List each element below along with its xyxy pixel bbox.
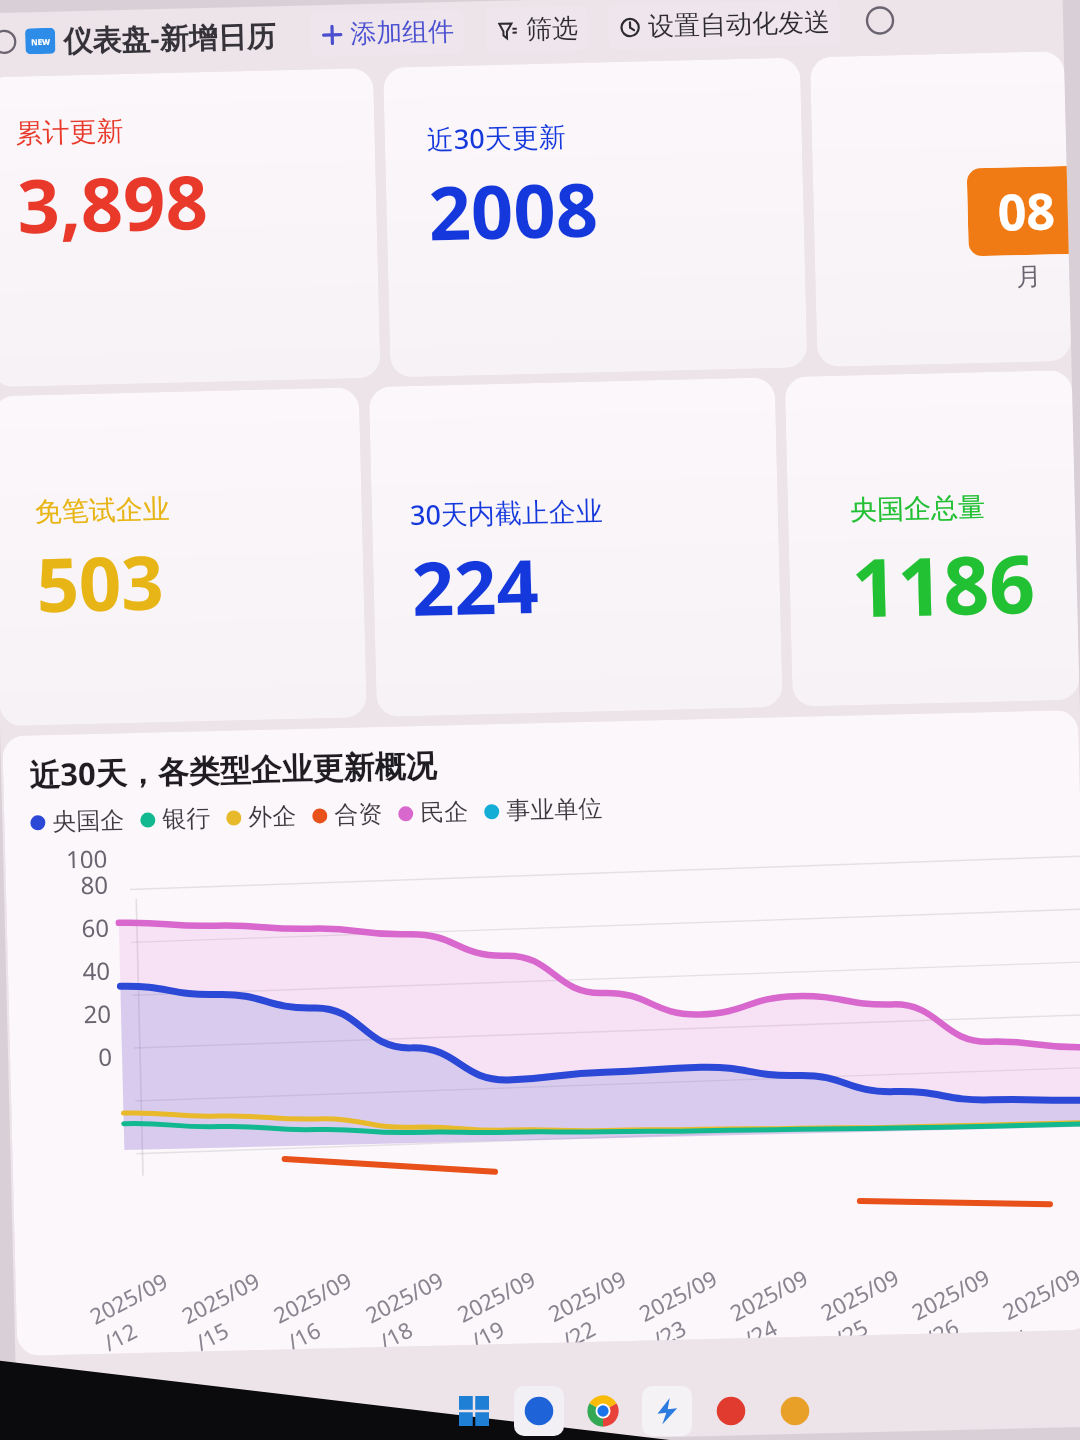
button[interactable]: 返回	[0, 24, 22, 59]
staticText: NEW	[31, 36, 50, 47]
staticText: 2025/09/19	[451, 1260, 560, 1345]
button[interactable]: 更多	[859, 0, 900, 41]
staticText: 224	[410, 534, 540, 638]
button[interactable]: 近30天更新	[383, 57, 807, 378]
staticText: 央国企	[52, 805, 125, 837]
staticText: 100	[31, 842, 107, 869]
staticText: 月	[1016, 261, 1042, 292]
button[interactable]: 应用2	[770, 1386, 820, 1436]
staticText: 2025/09/16	[267, 1260, 377, 1350]
staticText: 近30天更新	[426, 117, 566, 158]
button[interactable]: 添加组件	[310, 9, 465, 57]
button[interactable]: 30天内截止企业	[369, 377, 783, 717]
staticText: 外企	[248, 801, 297, 832]
staticText: 近30天，各类型企业更新概况	[29, 743, 438, 795]
staticText: 1186	[850, 527, 1037, 640]
button[interactable]: 外企	[226, 801, 313, 833]
staticText: 08	[997, 176, 1056, 246]
button[interactable]: 银行	[140, 803, 227, 835]
button[interactable]: 事业单位	[484, 793, 618, 826]
staticText: 合资	[334, 799, 383, 830]
button[interactable]: 设置自动化发送	[608, 0, 841, 50]
staticText: 2025/09/18	[359, 1260, 469, 1348]
staticText: 2025/09/22	[542, 1259, 651, 1343]
staticText: 503	[35, 530, 165, 634]
button[interactable]: 近30天，各类型企业更新概况	[2, 710, 1080, 1356]
button[interactable]: 开始	[450, 1387, 498, 1435]
staticText: 60	[33, 911, 109, 945]
staticText: 民企	[420, 797, 469, 828]
staticText: 仪表盘-新增日历	[63, 15, 277, 60]
button[interactable]: 08	[810, 51, 1071, 367]
staticText: 设置自动化发送	[648, 6, 830, 43]
staticText: 2025/09/23	[632, 1259, 742, 1341]
button[interactable]: 应用	[706, 1386, 756, 1436]
button[interactable]: 合资	[312, 798, 399, 831]
staticText: 3,898	[16, 150, 209, 256]
button[interactable]: 编辑器	[642, 1386, 692, 1436]
staticText: 事业单位	[506, 793, 602, 826]
button[interactable]: 免笔试企业	[0, 387, 367, 726]
staticText: 40	[34, 954, 110, 988]
staticText: 筛选	[526, 12, 578, 46]
staticText: 2025/09/15	[175, 1261, 285, 1352]
staticText: 央国企总量	[850, 490, 985, 527]
button[interactable]: 搜索	[514, 1386, 564, 1436]
button[interactable]: Chrome	[578, 1386, 628, 1436]
button[interactable]: 央国企	[30, 805, 141, 837]
button[interactable]: 累计更新	[0, 68, 381, 387]
staticText: 0	[36, 1040, 112, 1074]
staticText: 添加组件	[350, 15, 455, 50]
staticText: 免笔试企业	[34, 492, 170, 529]
staticText: 2025/09/12	[83, 1261, 193, 1354]
staticText: 2025/09/	[996, 1258, 1080, 1332]
button[interactable]: 筛选	[486, 6, 589, 53]
staticText: 2025/09/24	[723, 1259, 832, 1339]
button[interactable]: 民企	[398, 796, 485, 828]
staticText: 20	[35, 997, 111, 1031]
staticText: 2025/09/26	[905, 1258, 1014, 1334]
button[interactable]: 央国企总量	[785, 370, 1080, 707]
staticText: 2025/09/25	[814, 1258, 923, 1336]
staticText: 2008	[427, 157, 600, 262]
staticText: 80	[31, 868, 108, 902]
staticText: 30天内截止企业	[409, 491, 603, 533]
staticText: 银行	[162, 803, 211, 834]
staticText: 累计更新	[15, 114, 124, 151]
